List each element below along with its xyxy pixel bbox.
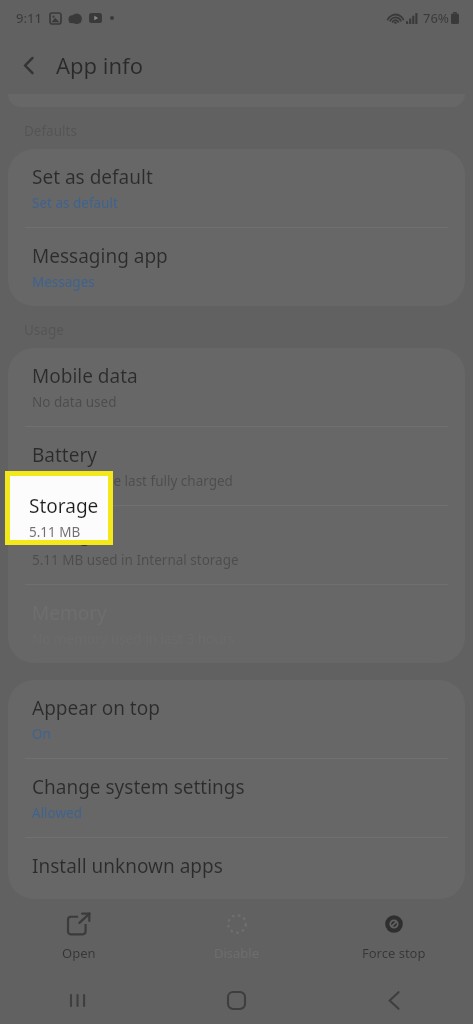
- staticText: Set as default: [32, 194, 118, 212]
- staticText: Disable: [214, 944, 260, 962]
- staticText: Messages: [32, 273, 95, 291]
- button[interactable]: Open: [19, 899, 139, 976]
- button[interactable]: Recent apps: [49, 976, 109, 1024]
- button[interactable]: Change system settings: [8, 759, 465, 837]
- button[interactable]: Messaging app: [8, 228, 465, 306]
- staticText: Force stop: [362, 944, 426, 962]
- button[interactable]: Storage: [8, 506, 465, 584]
- staticText: Change system settings: [32, 774, 245, 800]
- staticText: Defaults: [24, 122, 77, 140]
- button[interactable]: Back: [364, 976, 424, 1024]
- staticText: Set as default: [32, 164, 153, 190]
- button[interactable]: Home: [206, 976, 266, 1024]
- button[interactable]: Appear on top: [8, 680, 465, 758]
- button[interactable]: Back: [6, 42, 52, 88]
- staticText: 0% used since last fully charged: [32, 472, 233, 490]
- staticText: No data used: [32, 393, 117, 411]
- staticText: 76%: [423, 9, 449, 27]
- staticText: On: [32, 725, 51, 743]
- staticText: Storage: [32, 521, 102, 547]
- staticText: Messaging app: [32, 243, 168, 269]
- staticText: Mobile data: [32, 363, 138, 389]
- button[interactable]: Set as default: [8, 149, 465, 227]
- button[interactable]: Storage: [10, 476, 108, 540]
- staticText: Usage: [24, 321, 64, 339]
- staticText: 5.11 MB used in Internal storage: [29, 523, 108, 540]
- button[interactable]: Battery: [8, 427, 465, 505]
- staticText: 9:11: [16, 9, 42, 27]
- staticText: Allowed: [32, 804, 83, 822]
- staticText: Open: [62, 944, 96, 962]
- staticText: 5.11 MB used in Internal storage: [32, 551, 239, 569]
- staticText: Battery: [32, 442, 97, 468]
- staticText: App info: [56, 50, 143, 80]
- staticText: Storage: [29, 493, 99, 519]
- button[interactable]: Install unknown apps: [8, 838, 465, 899]
- staticText: Appear on top: [32, 695, 160, 721]
- button[interactable]: Mobile data: [8, 348, 465, 426]
- staticText: Install unknown apps: [32, 853, 223, 879]
- button[interactable]: Force stop: [334, 899, 454, 976]
